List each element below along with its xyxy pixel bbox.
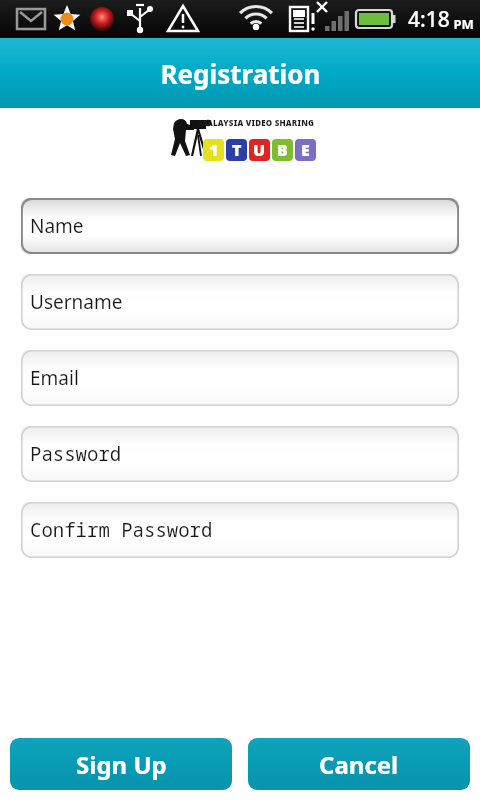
staticText: Cancel bbox=[319, 748, 399, 781]
staticText: Registration bbox=[160, 56, 321, 91]
staticText: 4:18 bbox=[408, 5, 450, 34]
button[interactable]: Username bbox=[21, 274, 459, 330]
staticText: T bbox=[232, 139, 242, 161]
button[interactable]: Email bbox=[21, 350, 459, 406]
button[interactable]: Sign Up bbox=[10, 738, 232, 790]
staticText: Email bbox=[30, 365, 79, 391]
staticText: Name bbox=[30, 213, 84, 239]
staticText: MALAYSIA VIDEO SHARING bbox=[199, 117, 315, 128]
staticText: U bbox=[253, 139, 266, 161]
button[interactable]: Name bbox=[21, 198, 459, 254]
staticText: Password bbox=[30, 441, 122, 467]
button[interactable]: Password bbox=[21, 426, 459, 482]
button[interactable]: Confirm Password bbox=[21, 502, 459, 558]
button[interactable]: Cancel bbox=[248, 738, 470, 790]
staticText: E bbox=[301, 139, 310, 161]
staticText: Confirm Password bbox=[30, 517, 213, 543]
staticText: Username bbox=[30, 289, 123, 315]
staticText: 1 bbox=[209, 139, 219, 161]
staticText: Sign Up bbox=[76, 748, 167, 781]
staticText: PM bbox=[450, 15, 474, 33]
staticText: B bbox=[277, 139, 288, 161]
